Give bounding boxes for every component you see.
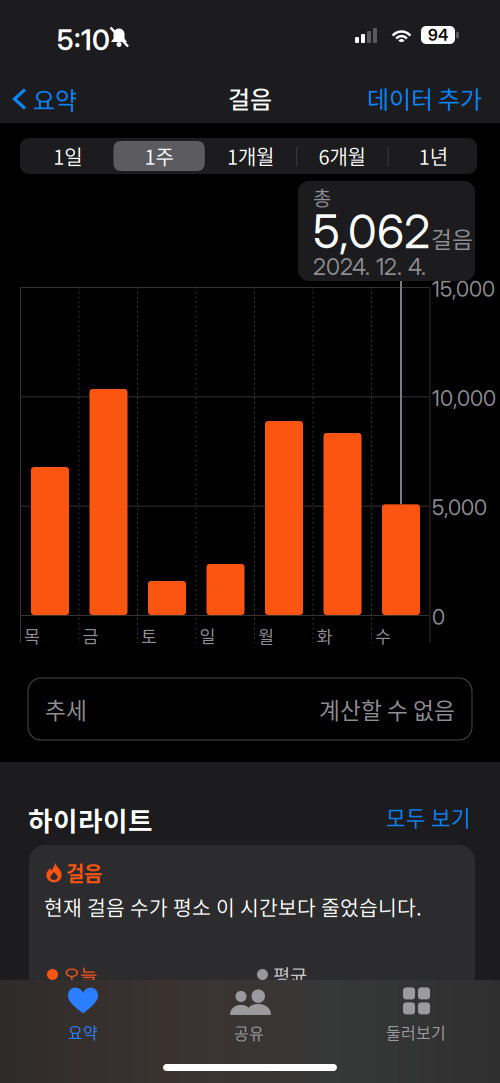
staticText: 5,062 [313, 203, 430, 259]
staticText: 금 [82, 623, 98, 648]
staticText: 1년 [419, 141, 448, 170]
button[interactable]: 1개월 [205, 141, 296, 171]
staticText: 1일 [53, 141, 82, 170]
staticText: 목 [24, 623, 40, 648]
staticText: 5,000 [432, 495, 487, 520]
button[interactable]: 추세 [28, 678, 472, 740]
staticText: 2024. 12. 4. [313, 253, 426, 280]
button[interactable]: 모두 보기 [374, 805, 471, 829]
staticText: 6개월 [318, 141, 365, 170]
staticText: 모두 보기 [386, 802, 471, 832]
staticText: 현재 걸음 수가 평소 이 시간보다 줄었습니다. [44, 892, 422, 921]
staticText: 토 [141, 623, 157, 648]
button[interactable]: 6개월 [296, 141, 388, 171]
staticText: 평균 [273, 961, 307, 988]
staticText: 공유 [234, 1021, 264, 1044]
staticText: 걸음 [431, 222, 473, 254]
staticText: 계산할 수 없음 [319, 693, 455, 725]
staticText: 수 [375, 623, 391, 648]
staticText: 0 [432, 604, 445, 630]
staticText: 10,000 [432, 385, 496, 411]
staticText: 1개월 [227, 141, 274, 170]
staticText: 5:10 [57, 23, 110, 57]
staticText: 요약 [33, 82, 77, 116]
staticText: 추세 [45, 693, 87, 725]
button[interactable]: 요약 [0, 984, 166, 1046]
staticText: 하이라이트 [28, 800, 153, 839]
button[interactable]: 공유 [166, 984, 332, 1046]
staticText: 요약 [68, 1020, 98, 1044]
staticText: 오늘 [63, 961, 97, 988]
staticText: 일 [199, 623, 215, 648]
button[interactable]: 1일 [22, 141, 113, 171]
staticText: 걸음 [228, 81, 272, 115]
staticText: 데이터 추가 [367, 81, 482, 115]
button[interactable]: 둘러보기 [332, 984, 500, 1046]
staticText: 15,000 [432, 276, 495, 302]
button[interactable]: 데이터 추가 [360, 85, 482, 111]
staticText: 월 [258, 623, 274, 648]
button[interactable]: 요약 [12, 83, 77, 115]
staticText: 94 [428, 25, 448, 45]
staticText: 1주 [145, 141, 174, 170]
staticText: 걸음 [66, 858, 102, 887]
staticText: 총 [313, 183, 331, 212]
staticText: 화 [316, 623, 332, 648]
staticText: 둘러보기 [386, 1020, 446, 1044]
button[interactable]: 1주 [113, 141, 205, 171]
button[interactable]: 걸음 [29, 845, 475, 1025]
button[interactable]: 1년 [388, 141, 479, 171]
